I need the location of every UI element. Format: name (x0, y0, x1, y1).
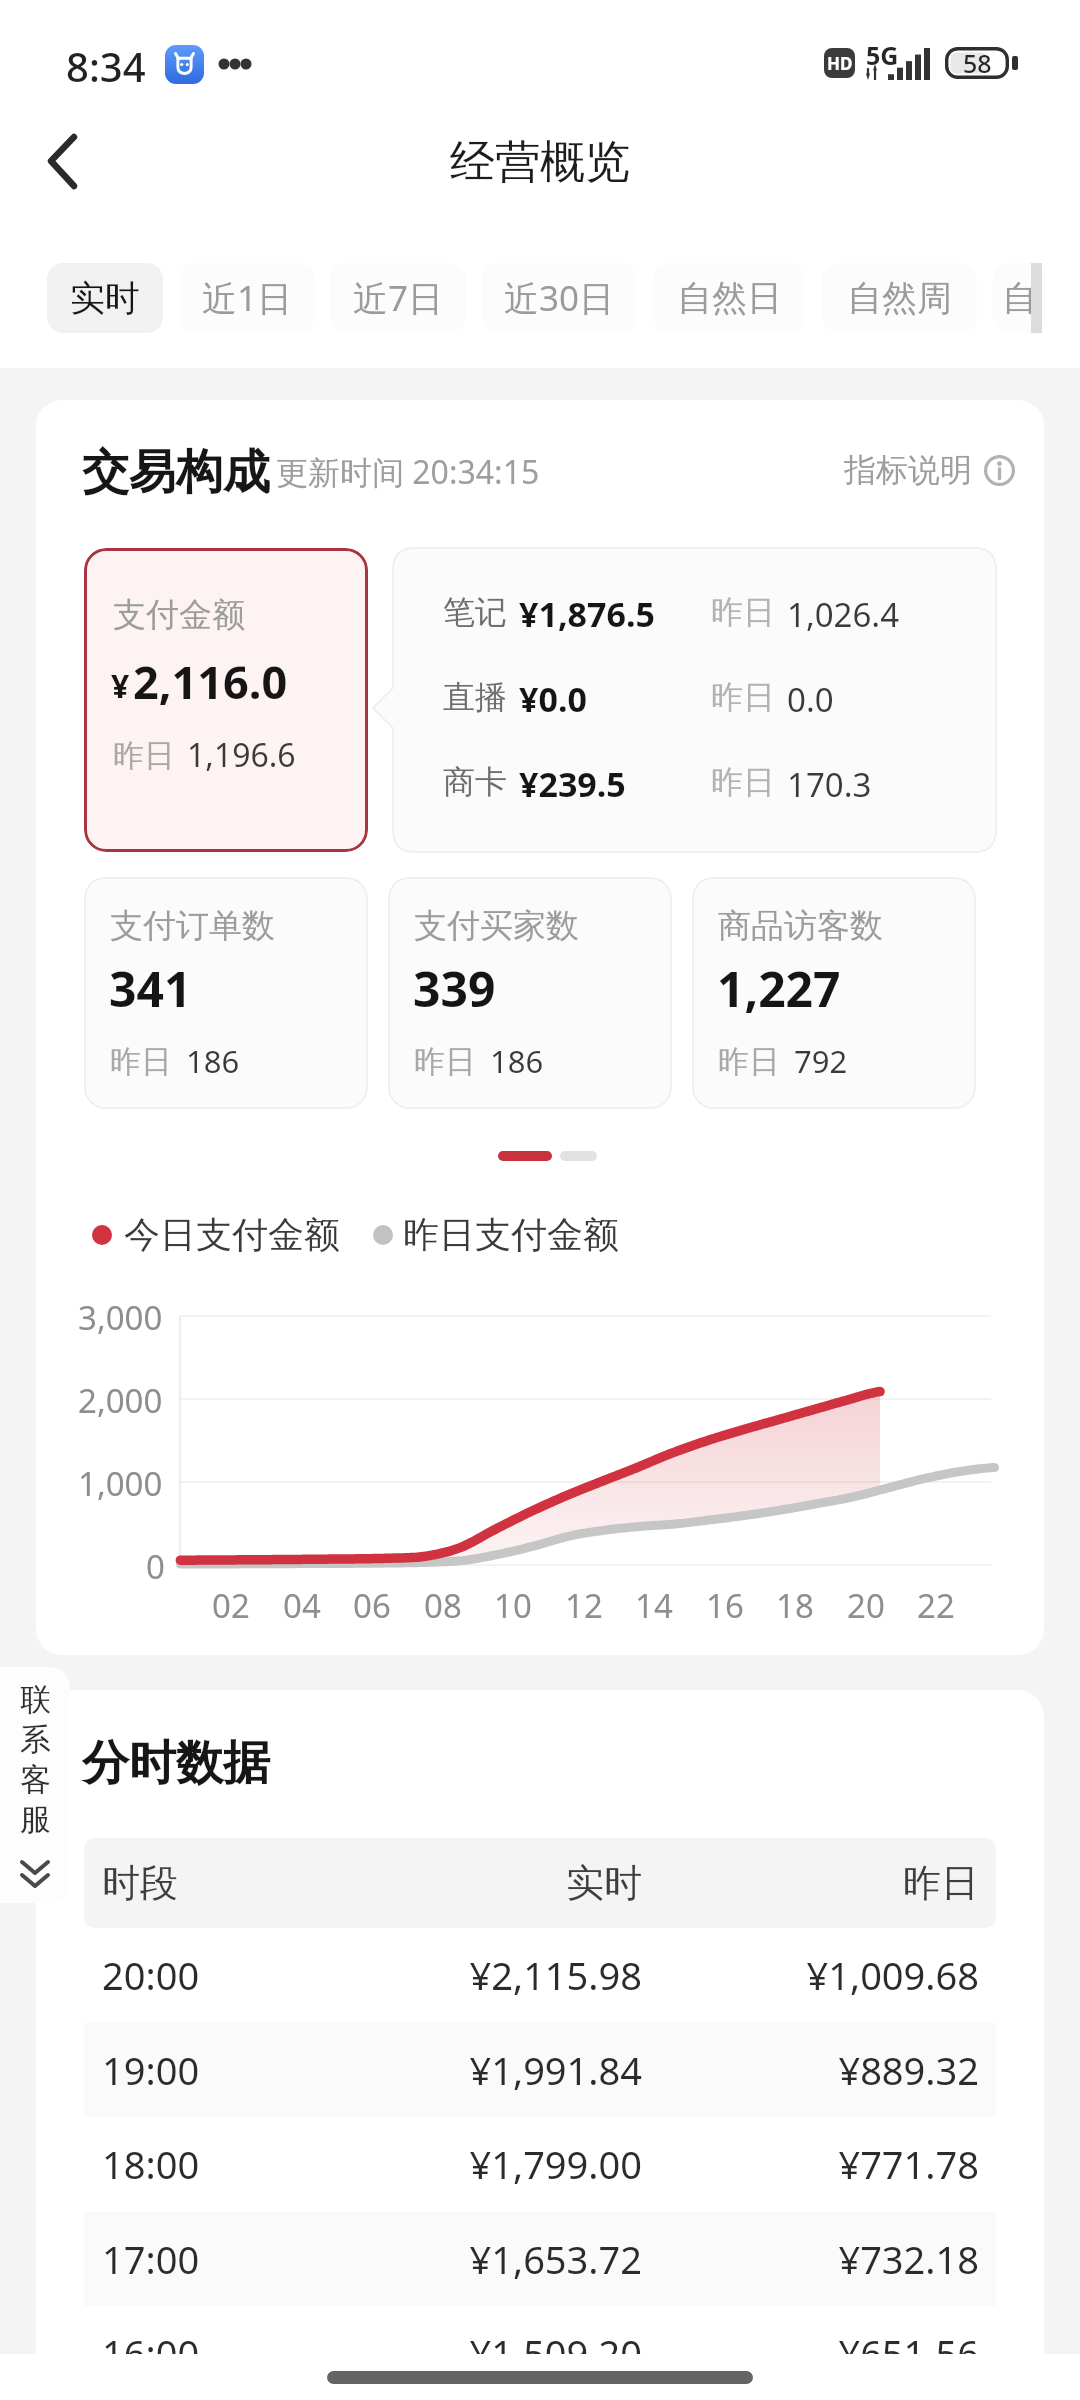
staticText: ¥1,509.20 (336, 2327, 642, 2354)
staticText: ¥2,115.98 (336, 1949, 642, 2001)
staticText: 0.0 (787, 677, 834, 722)
button[interactable]: 近7日 (330, 263, 466, 333)
button[interactable]: 返回 (18, 120, 108, 204)
staticText: ¥1,009.68 (676, 1949, 979, 2001)
staticText: ¥889.32 (676, 2044, 979, 2096)
staticText: 商品访客数 (718, 905, 883, 947)
button[interactable]: 近30日 (482, 263, 637, 333)
staticText: 自 (1002, 276, 1037, 320)
staticText: 更新时间 20:34:15 (276, 450, 540, 494)
staticText: 1,227 (717, 956, 841, 1021)
staticText: ¥732.18 (676, 2233, 979, 2285)
staticText: 02 (212, 1583, 250, 1628)
staticText: 1,196.6 (187, 733, 296, 777)
staticText: ¥ (111, 664, 130, 708)
staticText: 186 (490, 1040, 544, 1082)
staticText: 16:00 (102, 2327, 200, 2354)
staticText: 2,000 (78, 1378, 163, 1423)
button[interactable]: 支付买家数 (388, 877, 672, 1109)
staticText: 直播 (443, 677, 507, 717)
button[interactable]: 自 (993, 263, 1045, 333)
staticText: 0 (146, 1544, 165, 1589)
button[interactable]: 18:00 (84, 2117, 996, 2211)
staticText: 客 (20, 1760, 51, 1799)
button[interactable]: 自然周 (822, 263, 977, 333)
staticText: 19:00 (102, 2044, 200, 2096)
staticText: 经营概览 (450, 134, 630, 191)
staticText: 自然周 (847, 276, 952, 320)
staticText: 支付买家数 (414, 905, 579, 947)
staticText: 18:00 (102, 2138, 200, 2190)
staticText: 时段 (102, 1859, 178, 1907)
staticText: 近7日 (353, 274, 444, 322)
staticText: 支付金额 (113, 594, 245, 636)
staticText: 昨日 (718, 1042, 780, 1081)
button[interactable]: 指标说明 (844, 450, 1015, 490)
staticText: 17:00 (102, 2233, 200, 2285)
staticText: 实时 (70, 276, 140, 320)
button[interactable]: 联系客服 (0, 1667, 70, 1903)
staticText: 昨日 (711, 677, 775, 717)
staticText: 指标说明 (844, 450, 972, 490)
staticText: 联 (20, 1680, 51, 1719)
staticText: 交易构成 (82, 443, 270, 502)
staticText: 186 (186, 1040, 240, 1082)
button[interactable]: 17:00 (84, 2212, 996, 2306)
button[interactable]: 近1日 (179, 263, 315, 333)
staticText: 分时数据 (82, 1734, 270, 1793)
staticText: 实时 (336, 1859, 642, 1907)
button[interactable]: 自然日 (653, 263, 805, 333)
staticText: 20:00 (102, 1949, 200, 2001)
staticText: ¥651.56 (676, 2327, 979, 2354)
staticText: ¥771.78 (676, 2138, 979, 2190)
staticText: 自然日 (677, 276, 782, 320)
button[interactable]: 支付订单数 (84, 877, 368, 1109)
button[interactable]: 16:00 (84, 2306, 996, 2354)
staticText: 系 (20, 1720, 51, 1759)
staticText: 昨日 (676, 1859, 979, 1907)
staticText: 18 (776, 1583, 814, 1628)
staticText: 08 (424, 1583, 462, 1628)
staticText: 昨日 (113, 736, 175, 775)
staticText: ¥0.0 (519, 676, 587, 722)
button[interactable]: 19:00 (84, 2023, 996, 2117)
staticText: 16 (706, 1583, 744, 1628)
staticText: 58 (963, 46, 992, 78)
staticText: 昨日支付金额 (403, 1212, 619, 1257)
staticText: 服 (20, 1800, 51, 1839)
staticText: 5G (866, 38, 899, 72)
staticText: 792 (794, 1040, 848, 1082)
button[interactable]: 20:00 (84, 1928, 996, 2022)
staticText: 近30日 (504, 274, 615, 322)
staticText: 339 (413, 956, 496, 1021)
staticText: HD (827, 52, 853, 75)
button[interactable]: 商品访客数 (692, 877, 976, 1109)
staticText: ¥1,876.5 (519, 591, 655, 637)
staticText: 昨日 (414, 1042, 476, 1081)
staticText: 支付订单数 (110, 905, 275, 947)
staticText: ¥1,653.72 (336, 2233, 642, 2285)
staticText: ¥1,991.84 (336, 2044, 642, 2096)
staticText: 10 (494, 1583, 532, 1628)
staticText: 14 (635, 1583, 673, 1628)
staticText: 12 (565, 1583, 603, 1628)
staticText: 3,000 (78, 1295, 163, 1340)
staticText: 341 (109, 956, 192, 1021)
staticText: 昨日 (110, 1042, 172, 1081)
staticText: 近1日 (202, 274, 293, 322)
staticText: 04 (283, 1583, 321, 1628)
button[interactable]: 支付金额 (84, 548, 368, 852)
staticText: ¥239.5 (519, 761, 626, 807)
staticText: 昨日 (711, 762, 775, 802)
staticText: 22 (917, 1583, 955, 1628)
staticText: 170.3 (787, 762, 872, 807)
staticText: 1,000 (78, 1461, 163, 1506)
staticText: 8:34 (66, 39, 146, 93)
button[interactable]: 实时 (47, 263, 163, 333)
staticText: 今日支付金额 (124, 1212, 340, 1257)
staticText: 06 (353, 1583, 391, 1628)
staticText: 笔记 (443, 592, 507, 632)
staticText: 20 (847, 1583, 885, 1628)
staticText: 1,026.4 (787, 592, 900, 637)
staticText: 昨日 (711, 592, 775, 632)
